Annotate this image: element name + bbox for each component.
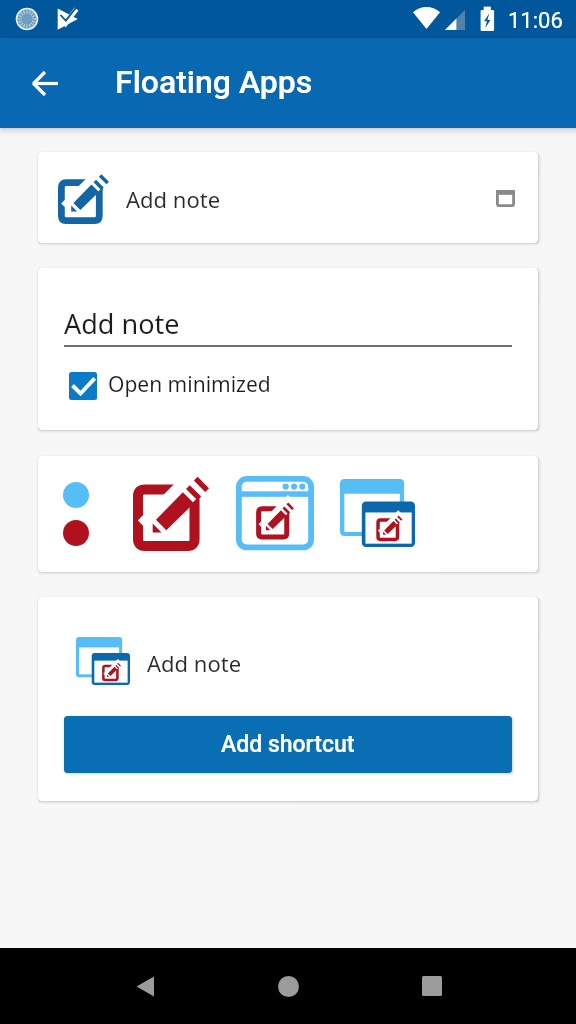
staticText: Floating Apps	[115, 63, 313, 101]
staticText: Add note	[147, 648, 242, 678]
button[interactable]: Add shortcut	[64, 716, 512, 773]
staticText: Add note	[126, 184, 221, 214]
button[interactable]: Window mode	[485, 178, 526, 219]
staticText: Open minimized	[108, 370, 271, 399]
button[interactable]: Navigate up	[19, 57, 71, 109]
staticText: Add shortcut	[221, 731, 355, 758]
button[interactable]	[63, 482, 89, 546]
staticText: 11:06	[508, 8, 563, 34]
button[interactable]: Home	[252, 956, 324, 1016]
button[interactable]: Add note	[38, 152, 538, 243]
button[interactable]: Back	[108, 956, 180, 1016]
button[interactable]: Plain icon	[133, 475, 209, 551]
button[interactable]: Open minimized	[69, 371, 271, 400]
button[interactable]: Window icon	[236, 476, 314, 554]
staticText: Add note	[64, 305, 180, 342]
button[interactable]: Floating window icon	[340, 479, 415, 547]
button[interactable]: Recent apps	[396, 956, 468, 1016]
